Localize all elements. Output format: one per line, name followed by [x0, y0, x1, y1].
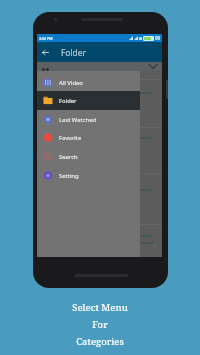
button[interactable]: Back [37, 42, 53, 62]
staticText: For [92, 318, 108, 331]
staticText: Select Menu [72, 301, 128, 314]
staticText: Folder [61, 47, 86, 58]
staticText: Last Watched [59, 116, 97, 124]
staticText: 3:04 PM [39, 36, 53, 41]
staticText: 99 [155, 35, 161, 41]
staticText: Favorite [59, 134, 82, 142]
button[interactable]: Last Watched [37, 110, 140, 129]
staticText: Setting [59, 172, 79, 180]
staticText: Categories [76, 335, 124, 348]
button[interactable]: Setting [37, 166, 140, 185]
button[interactable]: Favorite [37, 128, 140, 147]
staticText: Folder [59, 97, 77, 105]
button[interactable]: Search [37, 147, 140, 166]
button[interactable]: All Video [37, 73, 140, 92]
staticText: Search [59, 153, 78, 161]
other: Expand [149, 64, 157, 69]
staticText: All Video [59, 79, 83, 87]
button[interactable]: Folder [37, 91, 140, 110]
